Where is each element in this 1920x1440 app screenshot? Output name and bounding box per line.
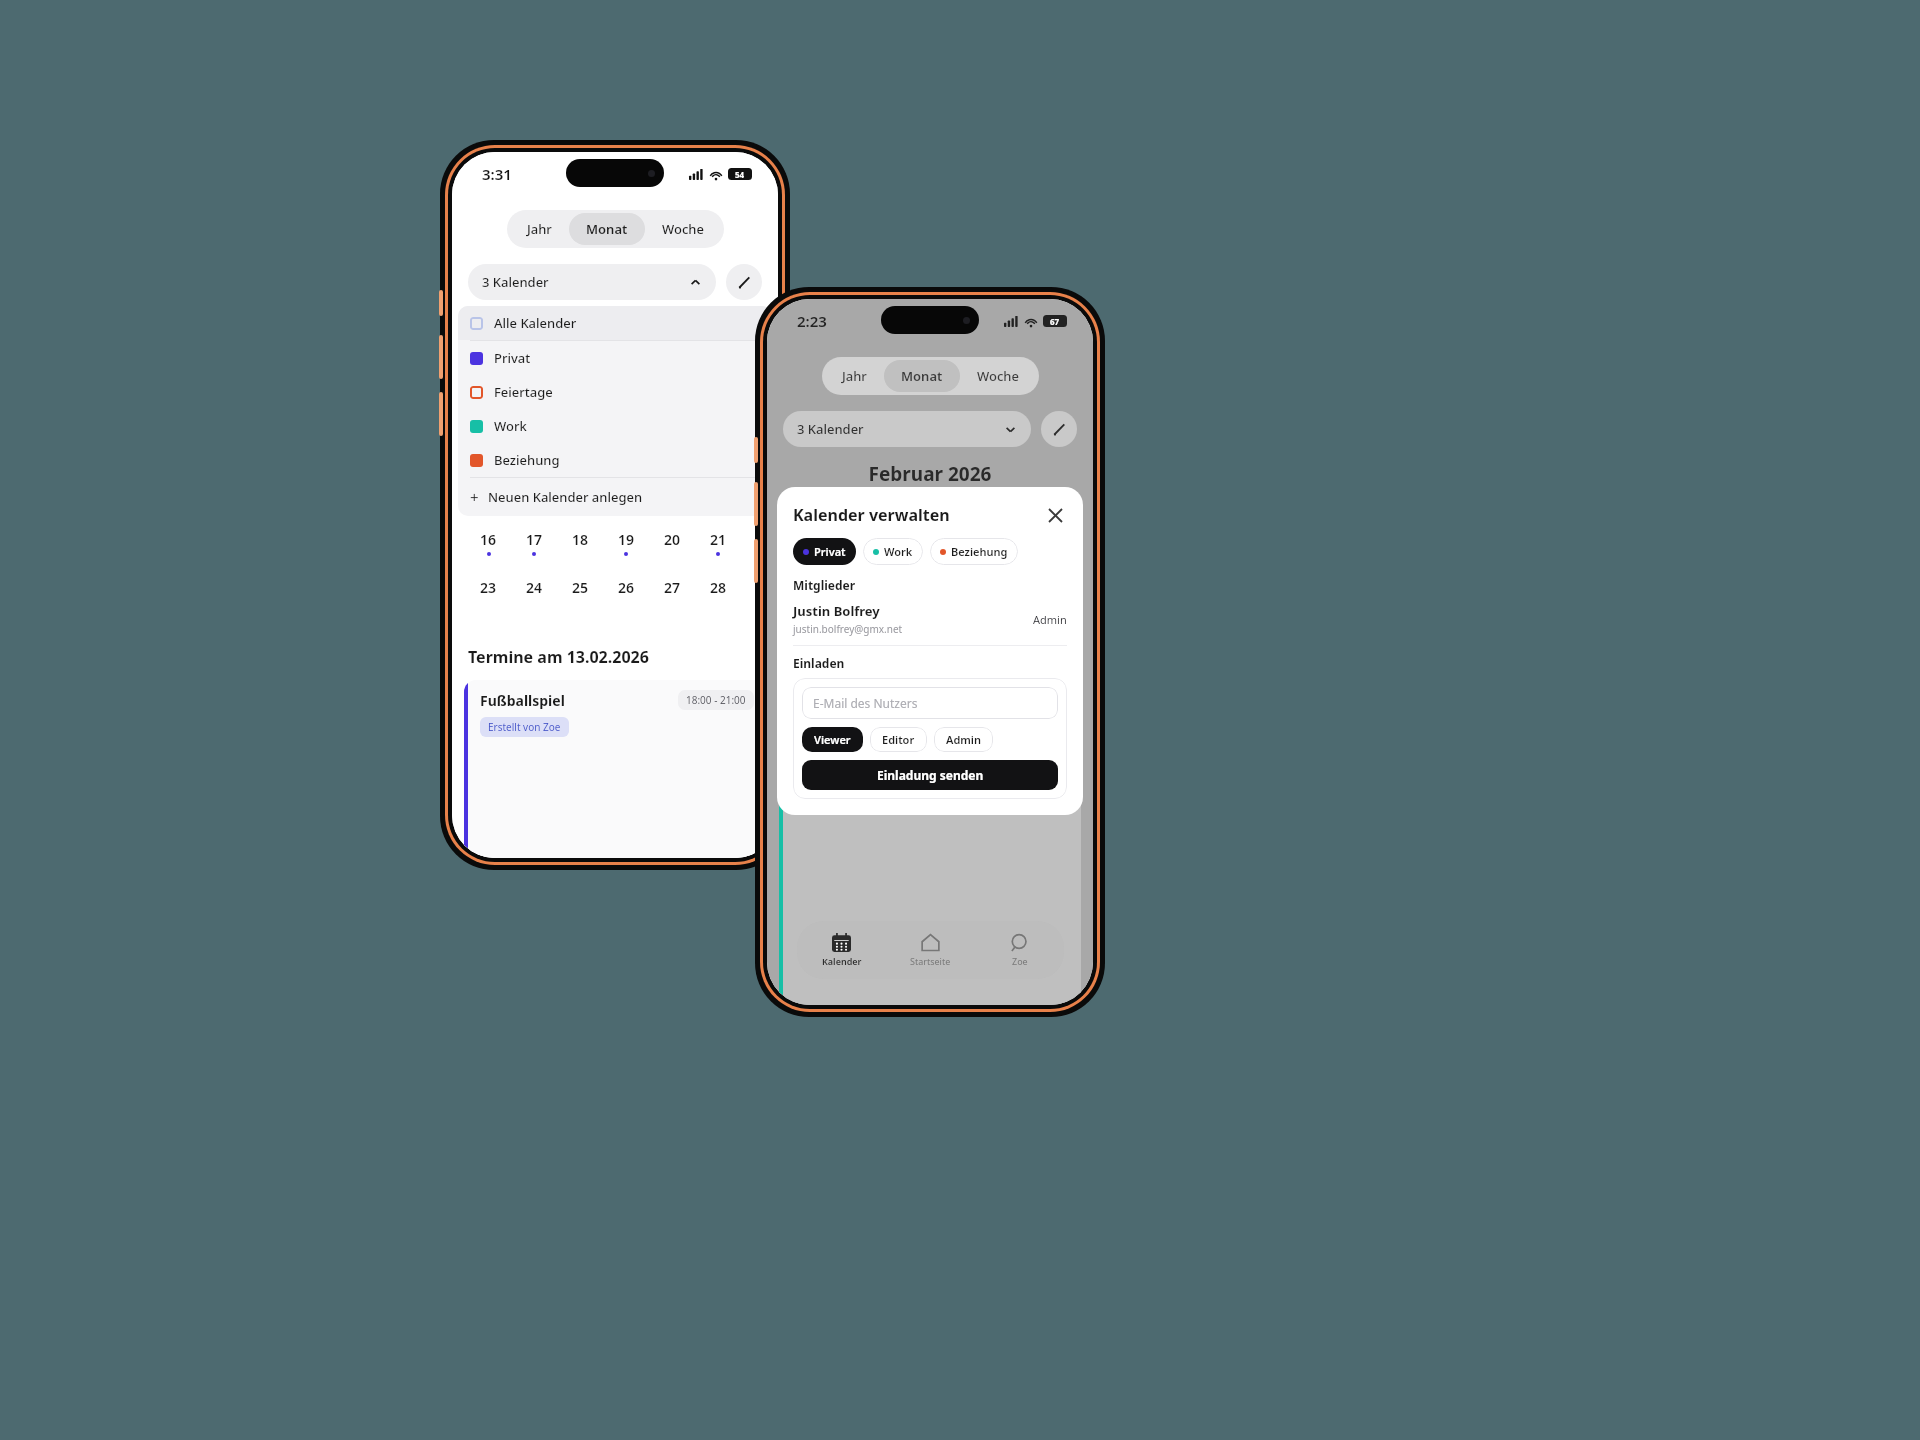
staticText: Woche [977, 367, 1019, 385]
staticText: Mitglieder [793, 577, 856, 593]
staticText: Privat [494, 349, 531, 367]
staticText: Justin Bolfrey [793, 602, 880, 620]
button[interactable]: 19 [603, 530, 649, 556]
staticText: Neuen Kalender anlegen [488, 488, 643, 506]
button[interactable]: 28 [695, 578, 741, 604]
button[interactable]: 21 [695, 530, 741, 556]
button[interactable]: Arbeit [779, 703, 1081, 1005]
staticText: Termine am 13.02.2026 [468, 646, 649, 668]
button[interactable]: 3 Kalender [468, 264, 716, 300]
staticText: 67 [1050, 316, 1060, 327]
button[interactable]: Startseite [886, 921, 975, 979]
button[interactable]: 26 [603, 578, 649, 604]
button[interactable]: Work [863, 538, 923, 565]
staticText: Beziehung [494, 451, 560, 469]
staticText: Alle Kalender [494, 314, 577, 332]
button[interactable]: Monat [569, 213, 645, 245]
button[interactable]: Privat [458, 341, 772, 375]
button[interactable]: Privat [793, 538, 856, 565]
button[interactable]: E-Mail des Nutzers [802, 687, 1058, 719]
staticText: Sun [1036, 495, 1079, 509]
staticText: 3 Kalender [797, 420, 864, 438]
staticText: 3:31 [482, 164, 512, 184]
button[interactable]: 23 [466, 578, 511, 604]
staticText: 27 [664, 578, 681, 597]
staticText: Privat [814, 544, 846, 559]
staticText: E-Mail des Nutzers [813, 695, 918, 711]
staticText: 24 [526, 578, 543, 597]
staticText: Termine am 13.02.2026 [783, 665, 964, 687]
button[interactable]: 18 [557, 530, 603, 556]
staticText: Editor [882, 732, 915, 747]
staticText: Jahr [527, 220, 552, 238]
button[interactable]: Feiertage [458, 375, 772, 409]
button[interactable]: 25 [557, 578, 603, 604]
staticText: Kalender [822, 955, 862, 967]
staticText: 18:00 - 21:00 [686, 693, 746, 707]
staticText: 20 [664, 530, 681, 549]
staticText: 54 [735, 169, 745, 180]
button[interactable]: Einladung senden [802, 760, 1058, 790]
button[interactable]: Admin [934, 727, 993, 752]
staticText: Einladung senden [877, 767, 984, 783]
button[interactable]: 3 Kalender [783, 411, 1031, 447]
button[interactable]: Woche [645, 213, 721, 245]
button[interactable]: Woche [960, 360, 1036, 392]
staticText: Feiertage [494, 383, 553, 401]
staticText: 16 [480, 530, 497, 549]
button[interactable]: 24 [511, 578, 557, 604]
staticText: Work [884, 544, 913, 559]
staticText: Viewer [814, 732, 851, 747]
staticText: Erstellt von Zoe [488, 720, 561, 734]
button[interactable]: + [458, 478, 772, 516]
staticText: Kalender verwalten [793, 504, 950, 526]
button[interactable]: Beziehung [930, 538, 1018, 565]
staticText: + [470, 487, 479, 507]
staticText: Arbeit [795, 714, 839, 733]
staticText: 14:00 - 17:00 [1001, 716, 1061, 730]
staticText: 25 [572, 578, 589, 597]
staticText: Monat [901, 367, 943, 385]
button[interactable]: Work [458, 409, 772, 443]
button[interactable]: Bearbeiten [1041, 411, 1077, 447]
button[interactable]: Bearbeiten [726, 264, 762, 300]
staticText: Einladen [793, 655, 845, 671]
button[interactable]: Kalender [797, 921, 886, 979]
button[interactable]: Zoe [975, 921, 1064, 979]
staticText: Admin [1033, 612, 1067, 627]
button[interactable]: Editor [870, 727, 927, 752]
button[interactable]: 27 [649, 578, 695, 604]
button[interactable]: Termin hinzufügen [1043, 659, 1077, 693]
staticText: Jahr [842, 367, 867, 385]
staticText: Woche [662, 220, 704, 238]
button[interactable]: 17 [511, 530, 557, 556]
button[interactable]: Fußballspiel [464, 680, 766, 858]
staticText: Zoe [1012, 955, 1028, 967]
staticText: Monat [586, 220, 628, 238]
button[interactable]: Schließen [1043, 503, 1067, 527]
staticText: 18 [572, 530, 589, 549]
button[interactable]: Monat [884, 360, 960, 392]
staticText: Beziehung [951, 544, 1008, 559]
staticText: 2:23 [797, 311, 827, 331]
staticText: Startseite [910, 955, 951, 967]
staticText: 28 [710, 578, 727, 597]
button[interactable]: 16 [466, 530, 511, 556]
button[interactable]: 20 [649, 530, 695, 556]
staticText: Fußballspiel [480, 691, 565, 710]
button[interactable]: Jahr [510, 213, 569, 245]
button[interactable]: Beziehung [458, 443, 772, 477]
button[interactable]: Alle Kalender [458, 306, 772, 340]
staticText: Work [494, 417, 527, 435]
staticText: 23 [480, 578, 497, 597]
staticText: justin.bolfrey@gmx.net [793, 622, 903, 636]
button[interactable]: Jahr [825, 360, 884, 392]
staticText: 17 [526, 530, 543, 549]
button[interactable]: Viewer [802, 727, 863, 752]
